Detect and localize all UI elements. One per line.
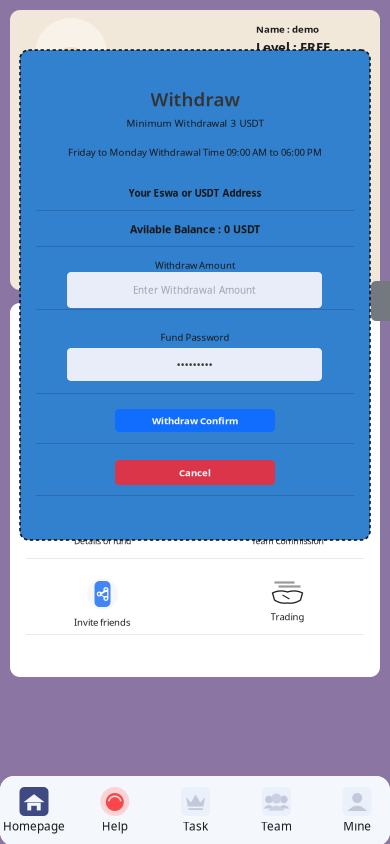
- staticText: Trading: [270, 610, 304, 623]
- button[interactable]: Homepage: [0, 776, 74, 844]
- staticText: Friday to Monday Withdrawal Time 09:00 A…: [68, 145, 322, 159]
- staticText: Details of fund: [74, 535, 131, 547]
- button[interactable]: Withdraw Confirm: [115, 409, 275, 432]
- button[interactable]: Help: [74, 776, 155, 844]
- staticText: Team Commission: [251, 535, 323, 547]
- staticText: Avilable Balance : 0 USDT: [130, 222, 260, 236]
- staticText: Minimum Withdrawal 3 USDT: [126, 116, 263, 130]
- button[interactable]: Task: [155, 776, 236, 844]
- staticText: Name : demo: [256, 22, 319, 36]
- staticText: Invite friends: [74, 615, 131, 628]
- staticText: Team: [261, 818, 292, 834]
- staticText: Level : FREE: [256, 38, 330, 56]
- button[interactable]: Mine: [317, 776, 390, 844]
- button[interactable]: Team: [236, 776, 317, 844]
- staticText: Withdraw Confirm: [152, 414, 238, 427]
- staticText: Cancel: [179, 466, 211, 479]
- staticText: Mine: [343, 818, 371, 834]
- staticText: Your Eswa or USDT Address: [128, 186, 261, 200]
- staticText: Task: [183, 818, 208, 834]
- button[interactable]: Trading: [195, 559, 380, 634]
- staticText: Withdraw: [150, 86, 239, 112]
- staticText: Fund Password: [160, 331, 229, 343]
- button[interactable]: Cancel: [115, 460, 275, 485]
- staticText: •••••••••: [176, 357, 212, 372]
- staticText: Homepage: [3, 818, 65, 834]
- staticText: Withdraw Amount: [155, 259, 235, 271]
- staticText: Help: [102, 818, 128, 834]
- button[interactable]: Invite friends: [10, 559, 195, 634]
- staticText: Enter Withdrawal Amount: [133, 283, 256, 297]
